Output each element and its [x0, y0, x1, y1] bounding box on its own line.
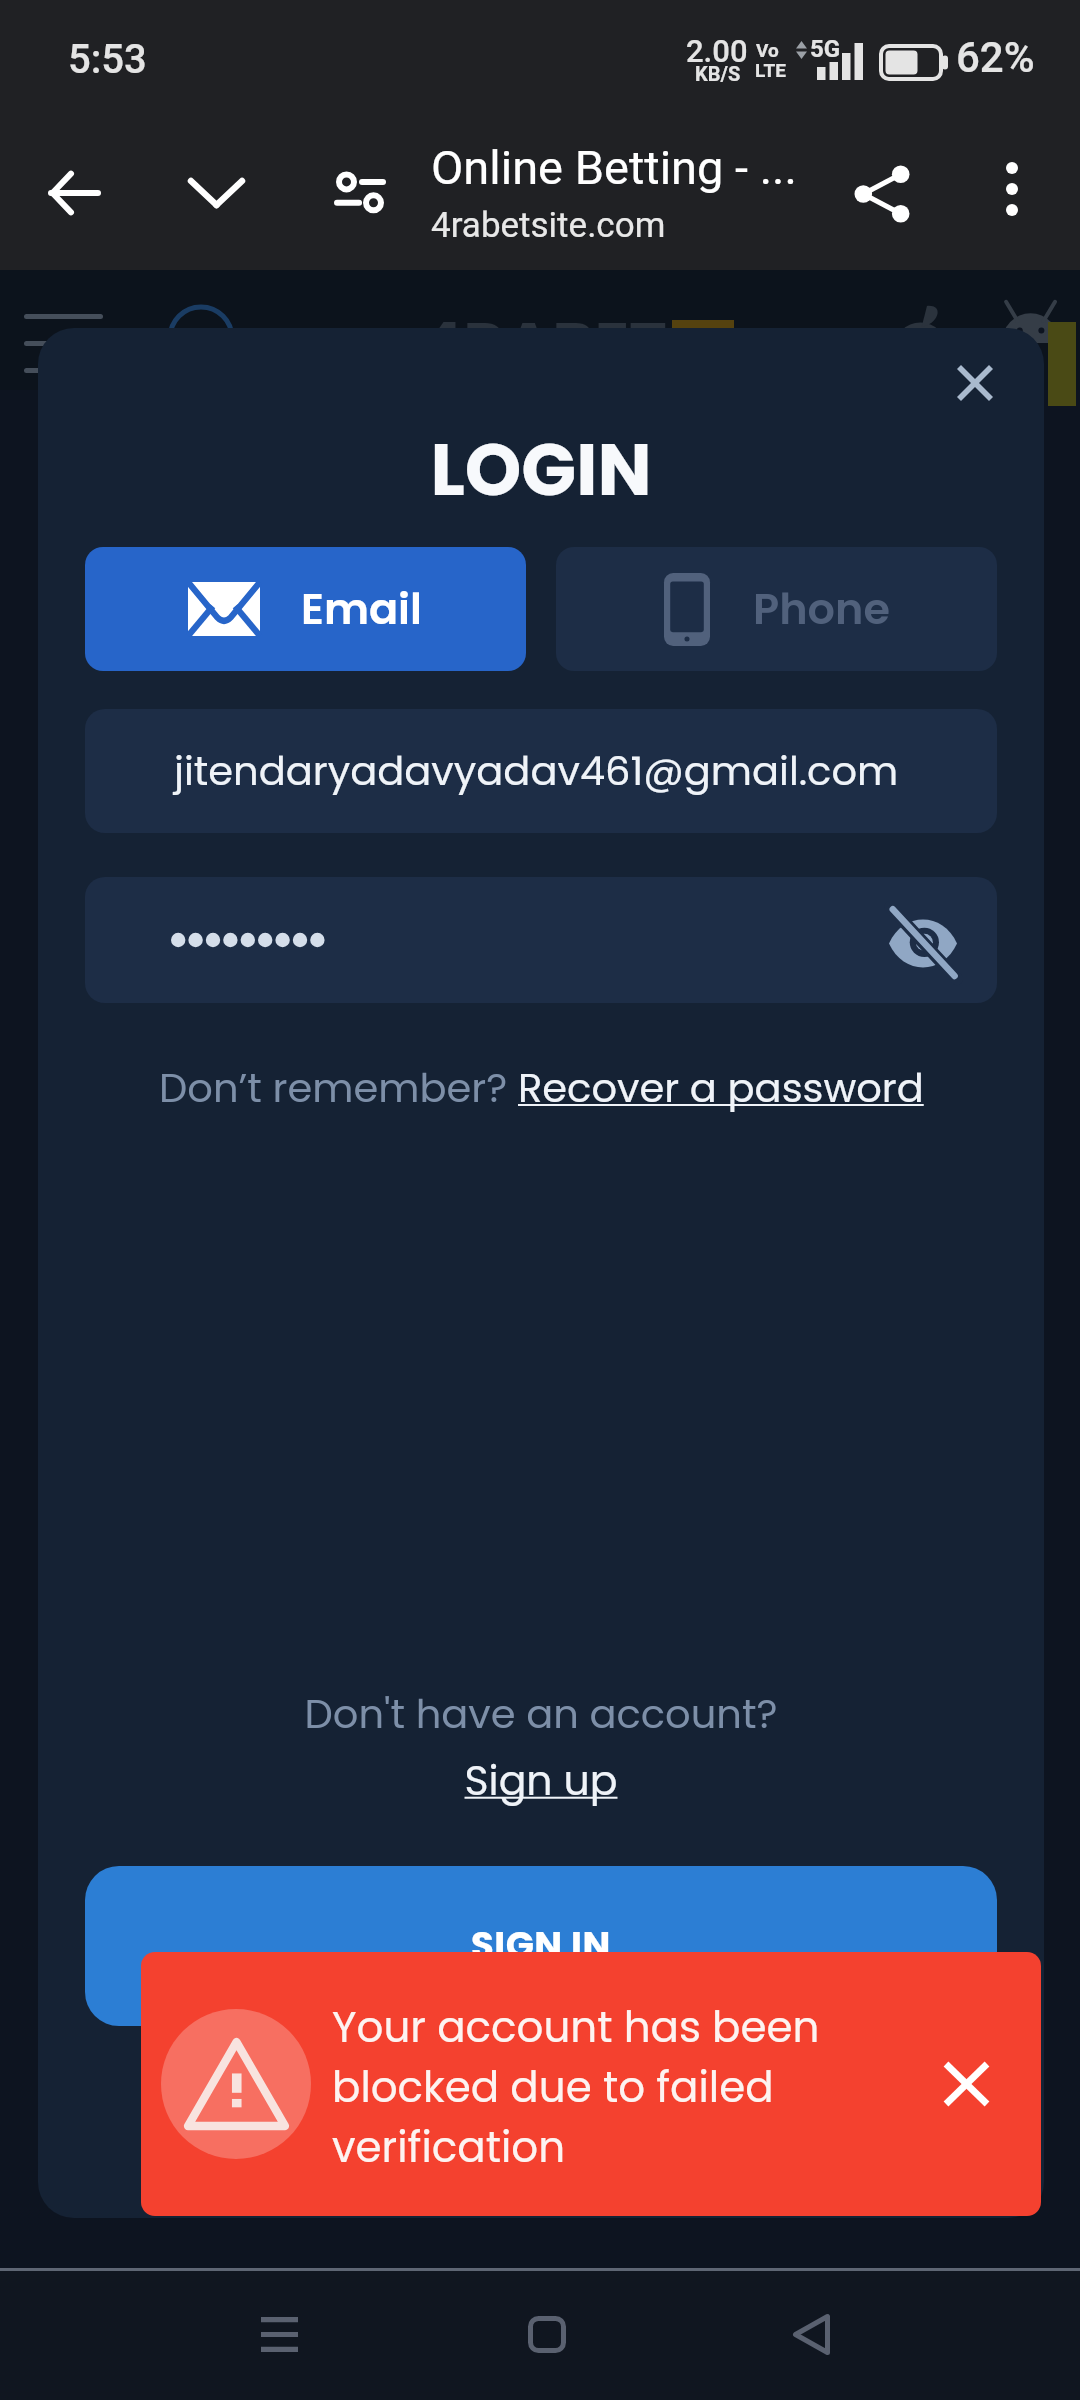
staticText: 4rabetsite.com — [431, 205, 666, 246]
staticText: 62% — [956, 33, 1035, 82]
button[interactable]: Page info — [302, 140, 418, 244]
button[interactable]: More options — [954, 137, 1070, 241]
button[interactable]: Dismiss — [918, 2036, 1014, 2132]
staticText: jitendaryadavyadav461@gmail.com — [174, 743, 899, 799]
staticText: 5:53 — [68, 36, 147, 83]
staticText: SIGN IN — [471, 1919, 611, 1971]
staticText: Online Betting - ... — [431, 140, 797, 195]
button[interactable]: Show password — [85, 877, 997, 1003]
button[interactable]: Show password — [877, 897, 969, 989]
button[interactable]: Sign up — [38, 1752, 1044, 1809]
button[interactable]: Back — [16, 141, 132, 245]
button[interactable]: Home — [487, 2274, 607, 2394]
staticText: 4RABET — [420, 301, 667, 391]
button[interactable]: Show more — [158, 141, 274, 245]
staticText: KB/S — [695, 62, 741, 85]
button[interactable]: Email — [85, 547, 526, 671]
staticText: Don’t remember? — [159, 1060, 518, 1116]
staticText: Don't have an account? — [38, 1686, 1044, 1742]
staticText: Vo — [756, 39, 779, 61]
button[interactable]: Phone — [556, 547, 997, 671]
button[interactable]: Close — [927, 335, 1023, 431]
staticText: LOGIN — [38, 419, 1044, 520]
staticText: Phone — [753, 579, 890, 639]
button[interactable]: Recover a password — [518, 1060, 924, 1116]
button[interactable]: SIGN IN — [85, 1866, 997, 2026]
staticText: Email — [301, 579, 423, 639]
staticText: 5G — [810, 35, 841, 63]
staticText: Your account has been blocked due to fai… — [332, 1998, 852, 2177]
staticText: 2.00 — [686, 33, 748, 69]
button[interactable]: Share — [824, 142, 940, 246]
button[interactable]: Recent apps — [219, 2274, 339, 2394]
button[interactable]: jitendaryadavyadav461@gmail.com — [85, 709, 997, 833]
staticText: LTE — [755, 59, 786, 81]
button[interactable]: Back — [751, 2274, 871, 2394]
